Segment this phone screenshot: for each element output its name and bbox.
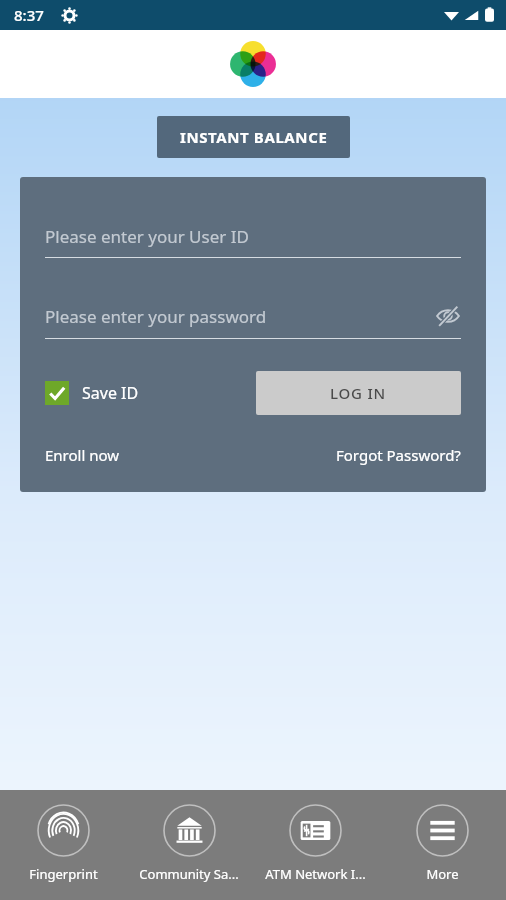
button[interactable]: Fingerprint bbox=[0, 790, 126, 900]
button[interactable]: INSTANT BALANCE bbox=[157, 116, 350, 158]
button[interactable]: Enroll now bbox=[45, 445, 120, 465]
staticText: INSTANT BALANCE bbox=[180, 127, 328, 147]
staticText: Community Sa... bbox=[139, 865, 239, 883]
button[interactable]: Save ID bbox=[45, 381, 139, 405]
staticText: Please enter your password bbox=[45, 305, 435, 328]
staticText: Fingerprint bbox=[29, 865, 98, 883]
other: ATM Network I... bbox=[289, 804, 342, 857]
staticText: ATM Network I... bbox=[265, 865, 366, 883]
other: Community Sa... bbox=[163, 804, 216, 857]
other: Show password bbox=[435, 303, 461, 329]
button[interactable]: Please enter your User ID bbox=[45, 225, 461, 258]
staticText: Save ID bbox=[82, 382, 139, 404]
button[interactable]: More bbox=[379, 790, 506, 900]
button[interactable]: Forgot Password? bbox=[336, 445, 461, 465]
button[interactable]: LOG IN bbox=[256, 371, 461, 415]
button[interactable]: Community Sa... bbox=[126, 790, 252, 900]
button[interactable]: ATM Network I... bbox=[252, 790, 379, 900]
staticText: 8:37 bbox=[14, 5, 44, 25]
other: More bbox=[416, 804, 469, 857]
button[interactable]: Please enter your password bbox=[45, 303, 461, 339]
staticText: Please enter your User ID bbox=[45, 225, 461, 248]
other: Fingerprint bbox=[37, 804, 90, 857]
staticText: LOG IN bbox=[330, 383, 387, 403]
staticText: More bbox=[426, 865, 459, 883]
